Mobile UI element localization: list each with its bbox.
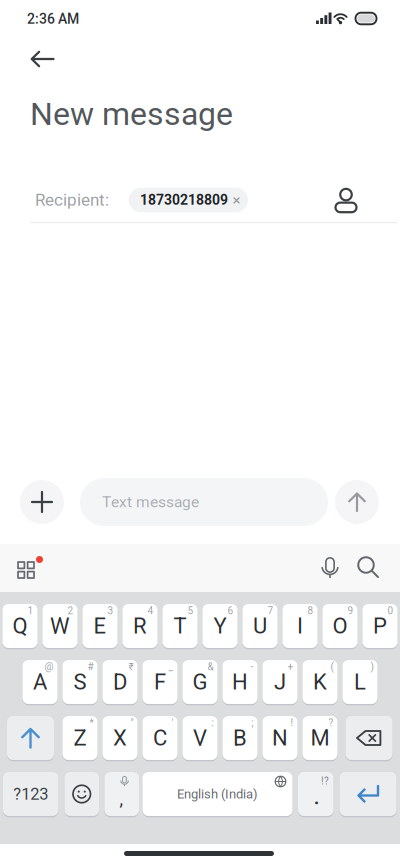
staticText: 4 — [147, 605, 153, 617]
button[interactable]: U — [242, 604, 277, 648]
button[interactable]: B — [222, 716, 257, 760]
staticText: 2:36 AM — [27, 11, 79, 27]
button[interactable]: Comma — [104, 772, 139, 816]
button[interactable]: Emoji — [64, 772, 99, 816]
button[interactable]: 18730218809 — [128, 188, 248, 212]
button[interactable]: D — [102, 660, 137, 704]
staticText: 1 — [27, 605, 33, 617]
staticText: N — [272, 725, 288, 751]
staticText: ' — [171, 717, 173, 729]
staticText: ₹ — [128, 661, 133, 673]
button[interactable]: T — [162, 604, 197, 648]
staticText: Text message — [102, 493, 199, 511]
staticText: W — [50, 613, 70, 639]
button[interactable]: G — [182, 660, 217, 704]
staticText: Q — [12, 613, 27, 639]
staticText: K — [313, 669, 327, 695]
button[interactable]: Backspace — [345, 716, 392, 760]
staticText: 18730218809 — [140, 192, 228, 208]
staticText: . — [314, 787, 319, 809]
staticText: 7 — [267, 605, 273, 617]
button[interactable]: W — [42, 604, 77, 648]
staticText: Z — [73, 725, 86, 751]
staticText: I — [297, 613, 303, 639]
staticText: ?123 — [13, 784, 48, 804]
button[interactable]: Space — [142, 772, 292, 816]
button[interactable]: E — [82, 604, 117, 648]
button[interactable]: Add attachment — [20, 480, 64, 524]
staticText: X — [113, 725, 127, 751]
button[interactable]: N — [262, 716, 297, 760]
staticText: 2 — [67, 605, 73, 617]
button[interactable]: I — [282, 604, 317, 648]
staticText: E — [93, 613, 106, 639]
staticText: O — [332, 613, 347, 639]
staticText: !? — [321, 775, 329, 787]
staticText: ( — [330, 661, 333, 673]
button[interactable]: Period — [298, 772, 333, 816]
staticText: 8 — [307, 605, 313, 617]
staticText: English (India) — [177, 786, 258, 802]
staticText: V — [193, 725, 207, 751]
button[interactable]: Search — [346, 545, 390, 589]
staticText: ? — [328, 717, 333, 729]
staticText: " — [130, 717, 133, 729]
button[interactable]: Return — [339, 772, 396, 816]
staticText: , — [119, 788, 123, 810]
staticText: M — [310, 725, 329, 751]
staticText: 6 — [227, 605, 233, 617]
staticText: Y — [213, 613, 226, 639]
staticText: R — [133, 613, 147, 639]
button[interactable]: Y — [202, 604, 237, 648]
staticText: : — [211, 717, 213, 729]
button[interactable]: A — [22, 660, 57, 704]
staticText: S — [73, 669, 86, 695]
button[interactable]: H — [222, 660, 257, 704]
staticText: ! — [290, 717, 293, 729]
button[interactable]: Z — [62, 716, 97, 760]
button[interactable]: C — [142, 716, 177, 760]
button[interactable]: Q — [2, 604, 37, 648]
button[interactable]: O — [322, 604, 357, 648]
button[interactable]: J — [262, 660, 297, 704]
staticText: @ — [44, 661, 53, 673]
staticText: 0 — [387, 605, 393, 617]
button[interactable]: Voice input — [308, 547, 352, 591]
button[interactable]: V — [182, 716, 217, 760]
staticText: B — [233, 725, 247, 751]
staticText: C — [153, 725, 167, 751]
staticText: L — [354, 669, 366, 695]
button[interactable]: Text message — [80, 478, 328, 526]
button[interactable]: M — [302, 716, 337, 760]
staticText: 9 — [347, 605, 353, 617]
button[interactable]: X — [102, 716, 137, 760]
staticText: & — [207, 661, 213, 673]
staticText: T — [173, 613, 186, 639]
button[interactable]: K — [302, 660, 337, 704]
button[interactable]: R — [122, 604, 157, 648]
button[interactable]: S — [62, 660, 97, 704]
button[interactable]: L — [342, 660, 377, 704]
button[interactable]: Keyboard features — [5, 548, 49, 592]
staticText: # — [87, 661, 93, 673]
staticText: × — [232, 191, 240, 209]
button[interactable]: Shift — [7, 716, 54, 760]
staticText: H — [232, 669, 248, 695]
staticText: _ — [168, 661, 173, 673]
button[interactable]: Choose contact — [324, 180, 368, 220]
button[interactable]: F — [142, 660, 177, 704]
staticText: G — [192, 669, 207, 695]
button[interactable]: Symbols — [3, 772, 58, 816]
staticText: D — [113, 669, 127, 695]
staticText: F — [154, 669, 166, 695]
button[interactable]: Send — [335, 480, 379, 524]
staticText: U — [253, 613, 267, 639]
staticText: * — [89, 717, 93, 729]
button[interactable]: Back — [20, 37, 64, 81]
button[interactable]: P — [362, 604, 397, 648]
staticText: J — [274, 669, 286, 695]
staticText: New message — [30, 95, 233, 133]
staticText: Recipient: — [35, 190, 109, 210]
staticText: A — [33, 669, 47, 695]
staticText: 3 — [107, 605, 113, 617]
